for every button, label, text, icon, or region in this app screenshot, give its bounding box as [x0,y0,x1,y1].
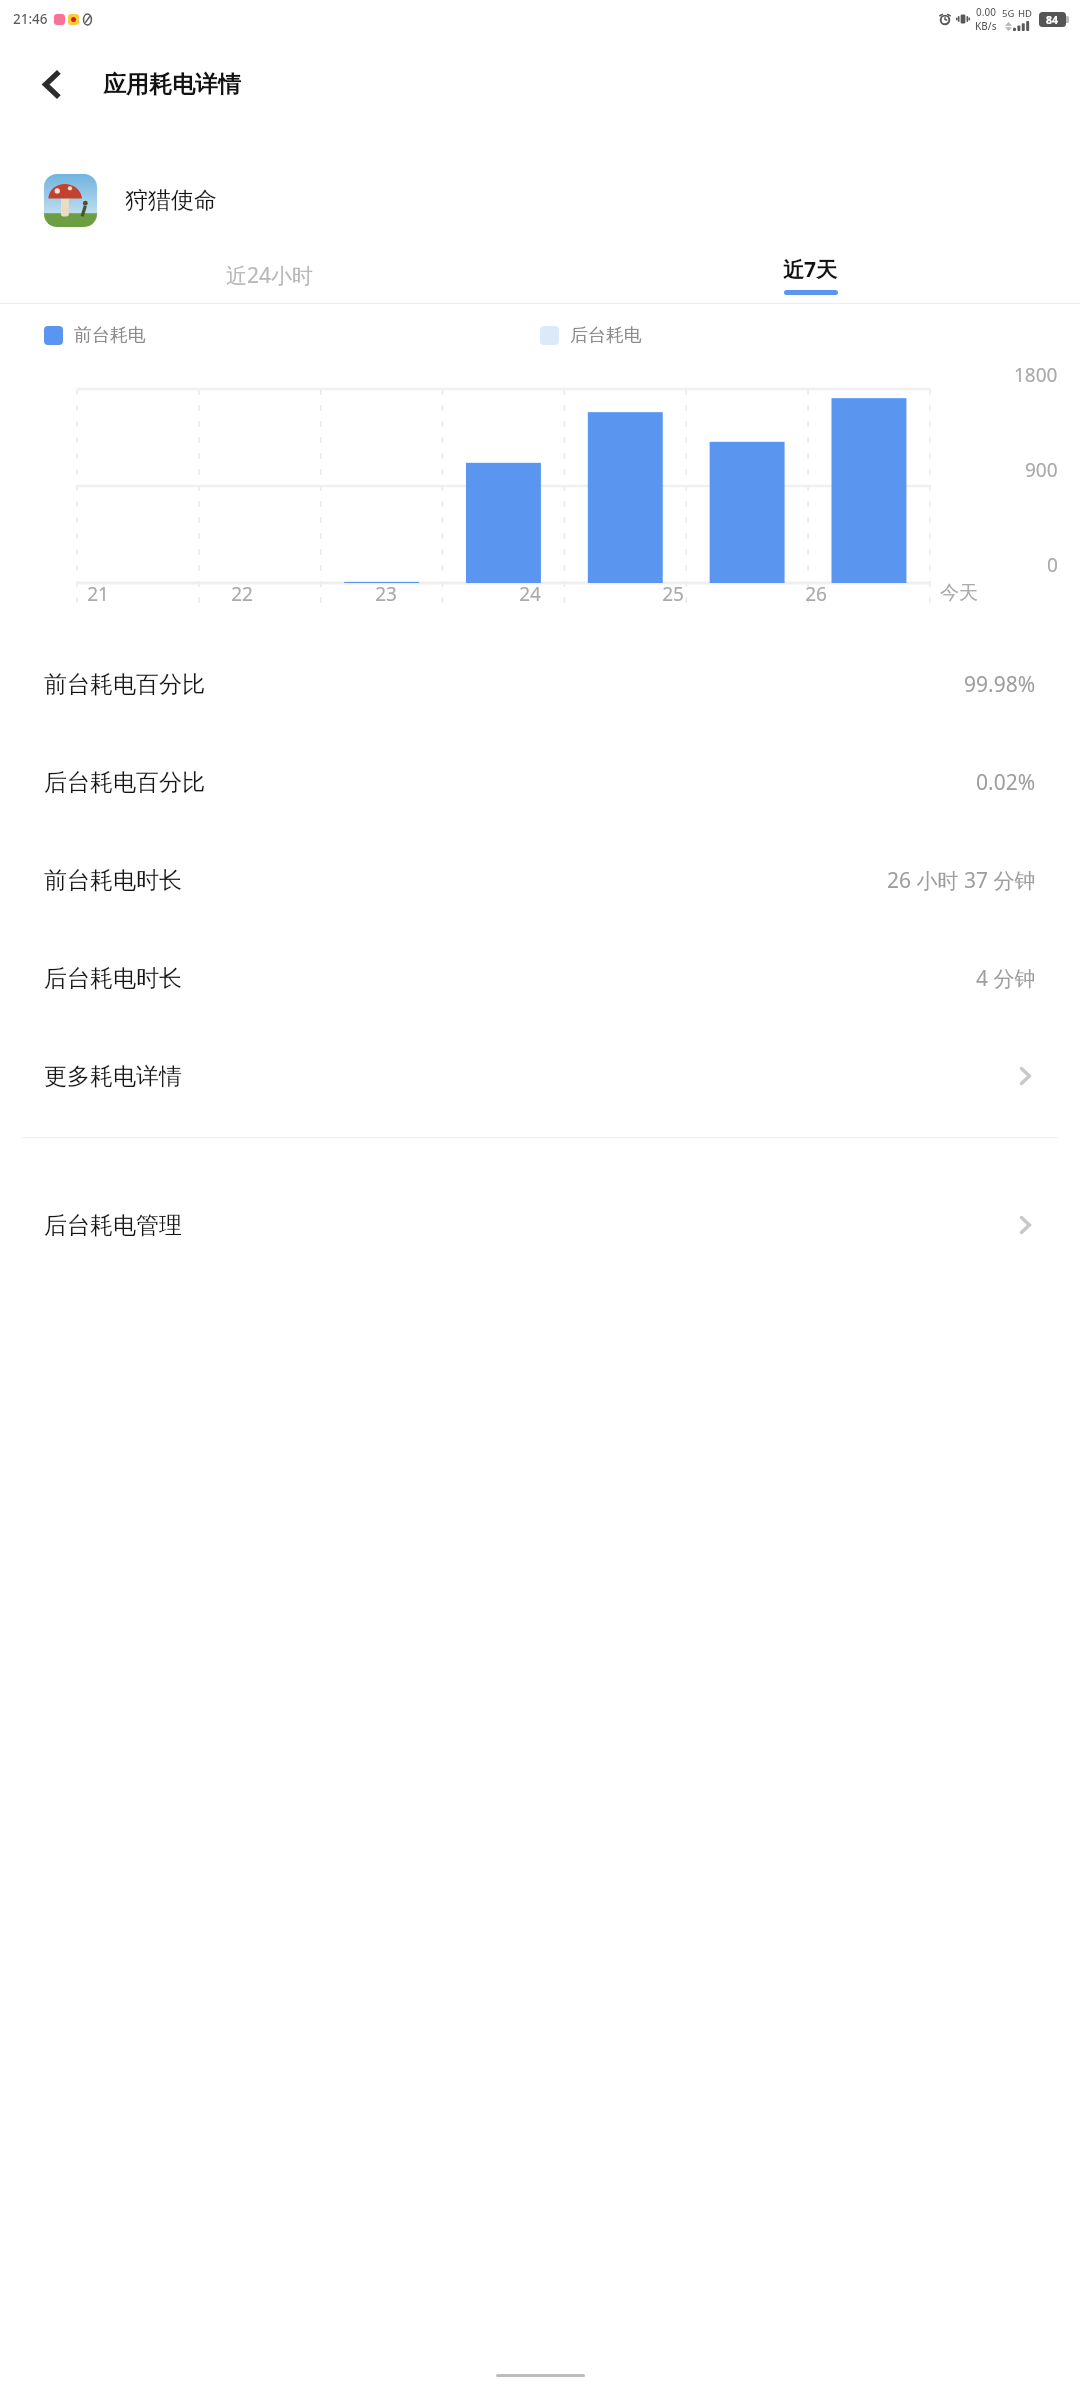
button[interactable]: 后台耗电时长 [0,929,1080,1027]
staticText: 近24小时 [226,261,314,290]
staticText: 更多耗电详情 [44,1062,182,1091]
staticText: 近7天 [783,255,838,284]
staticText: 后台耗电百分比 [44,768,205,797]
button[interactable]: 前台耗电百分比 [0,635,1080,733]
button[interactable]: 后台耗电百分比 [0,733,1080,831]
button[interactable]: 后台耗电管理 [0,1176,1080,1274]
button[interactable]: 更多耗电详情 [0,1027,1080,1125]
staticText: 0.02% [976,768,1036,797]
staticText: 今天 [940,581,978,605]
button[interactable]: Back [22,55,80,113]
staticText: 后台耗电管理 [44,1211,182,1240]
staticText: 后台耗电 [570,324,642,347]
button[interactable]: 近24小时 [0,247,540,303]
staticText: 狩猎使命 [125,186,217,215]
staticText: 22 [231,581,253,607]
staticText: 26 [805,581,827,607]
staticText: 0.00 [976,5,996,19]
staticText: 900 [1025,457,1058,483]
staticText: 前台耗电百分比 [44,670,205,699]
staticText: 26 小时 37 分钟 [887,866,1036,895]
staticText: 0 [1047,552,1058,578]
staticText: 4 分钟 [976,964,1036,993]
staticText: 1800 [1014,362,1058,388]
staticText: 99.98% [964,670,1036,699]
staticText: HD [1018,7,1033,20]
staticText: 前台耗电 [74,324,146,347]
staticText: 23 [375,581,397,607]
staticText: 5G [1002,7,1015,20]
button[interactable]: 前台耗电时长 [0,831,1080,929]
staticText: 21:46 [13,10,48,28]
staticText: KB/s [975,19,997,33]
staticText: 24 [519,581,541,607]
staticText: 应用耗电详情 [103,70,241,99]
staticText: 前台耗电时长 [44,866,182,895]
button[interactable]: 近7天 [540,247,1080,303]
staticText: 21 [87,581,109,607]
staticText: 后台耗电时长 [44,964,182,993]
staticText: 84 [1046,13,1059,27]
staticText: 25 [662,581,684,607]
